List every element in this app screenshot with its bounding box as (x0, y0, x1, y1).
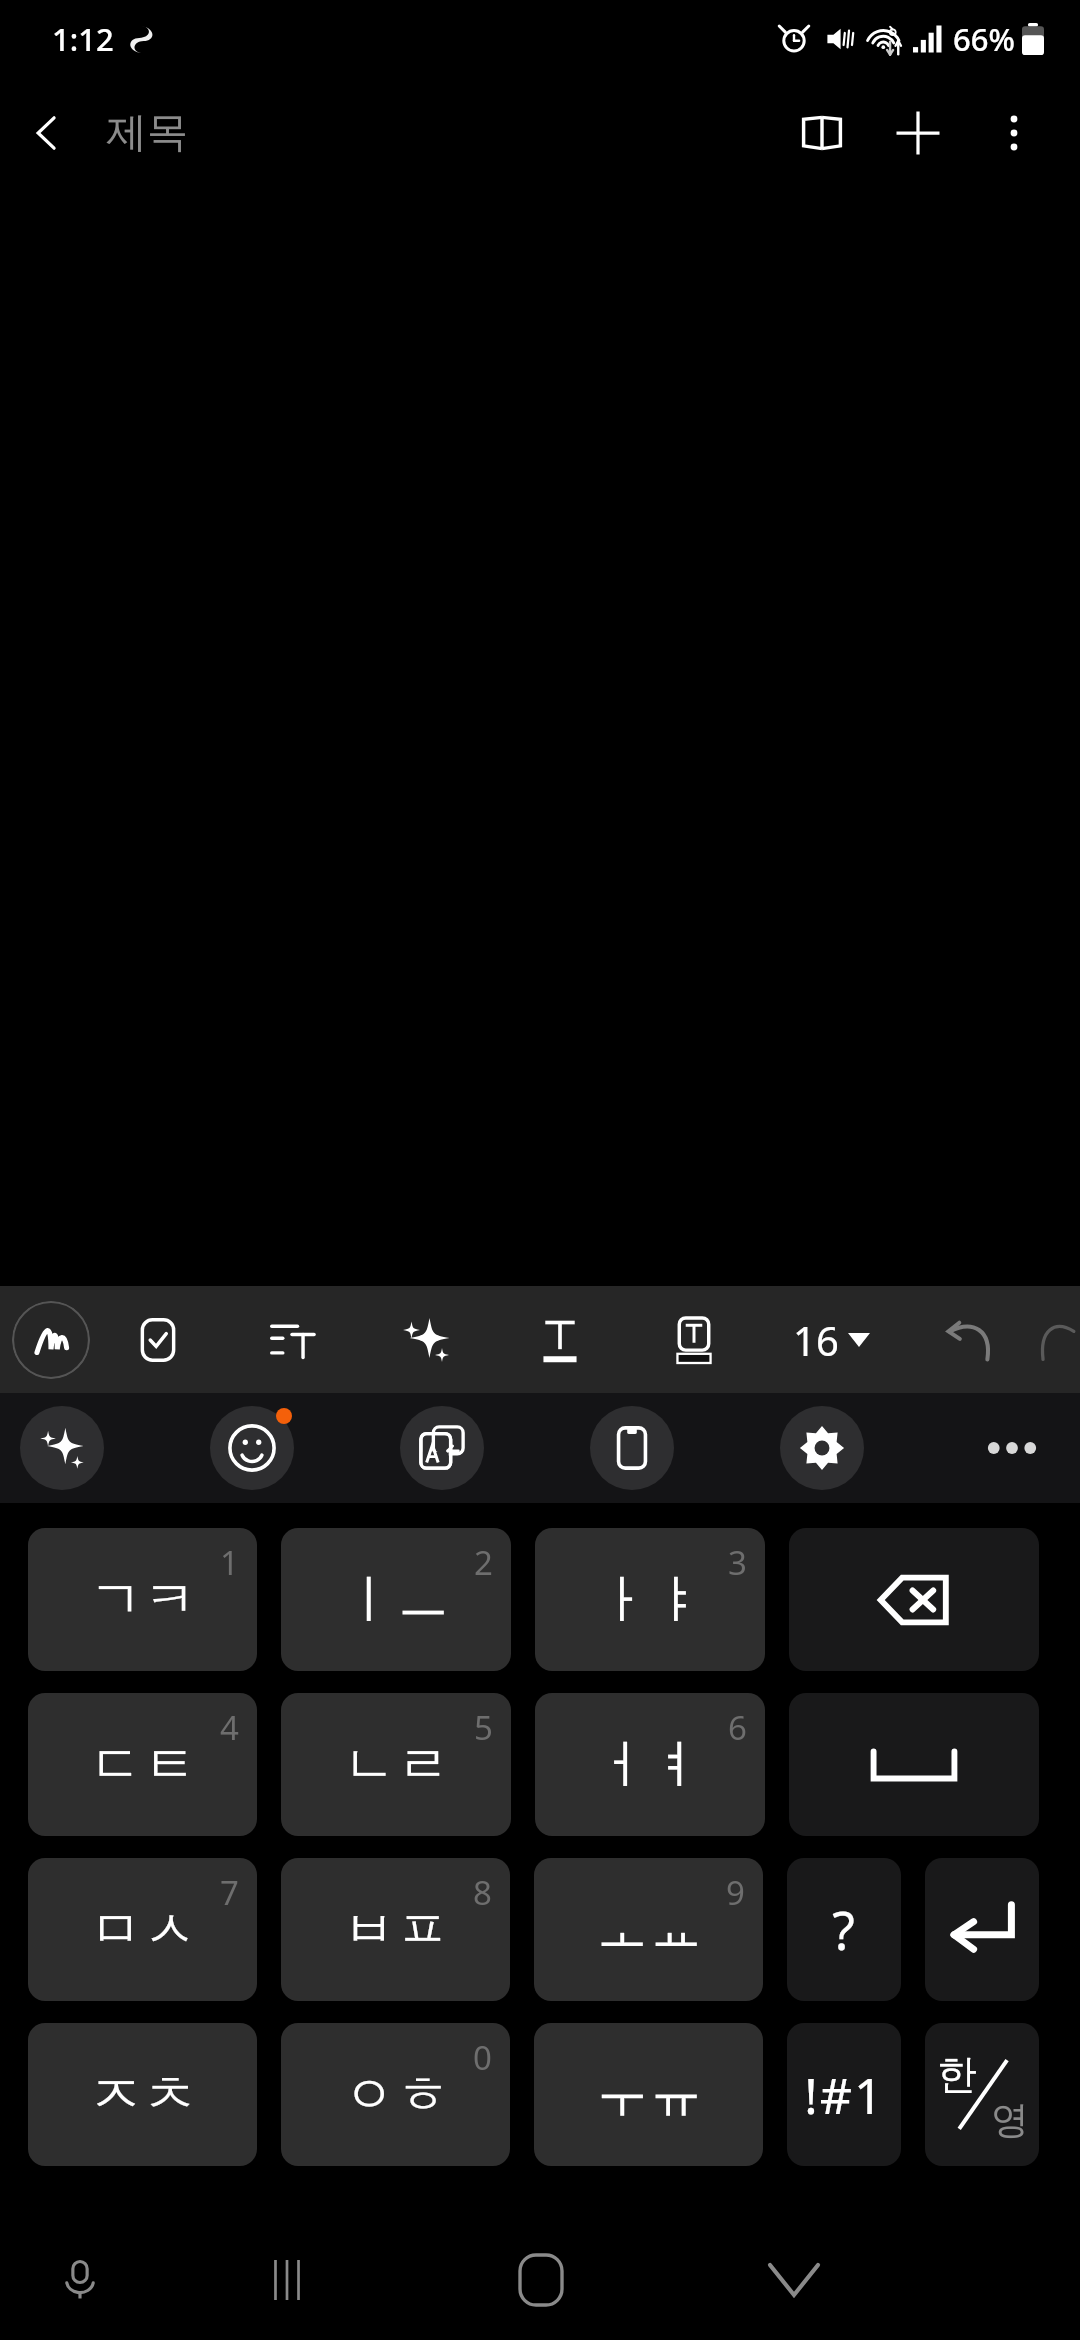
staticText: !#1 (804, 2061, 885, 2129)
button[interactable]: AI assist (359, 1286, 493, 1393)
button[interactable]: Text box (627, 1286, 761, 1393)
staticText: ㅈㅊ (89, 2062, 197, 2128)
button[interactable]: Font size (761, 1286, 902, 1393)
staticText: 제목 (106, 107, 188, 159)
button[interactable]: Recents (160, 2220, 414, 2340)
staticText: 66% (953, 18, 1015, 60)
staticText: 7 (220, 1870, 239, 1915)
button[interactable]: ㅇㅎ (281, 2023, 510, 2166)
staticText: ㅁㅅ (89, 1897, 197, 1963)
staticText: 3 (728, 1540, 747, 1585)
staticText: ㅓㅕ (596, 1732, 704, 1798)
button[interactable]: ? (787, 1858, 901, 2001)
staticText: 2 (474, 1540, 493, 1585)
button[interactable]: ㅈㅊ (28, 2023, 257, 2166)
staticText: ㅂㅍ (342, 1897, 450, 1963)
button[interactable]: ㅣㅡ (281, 1528, 511, 1671)
staticText: 영 (991, 2096, 1029, 2144)
staticText: 8 (473, 1870, 492, 1915)
staticText: 한 (937, 2049, 977, 2099)
button[interactable]: Add (870, 85, 966, 181)
staticText: 1 (220, 1540, 239, 1585)
button[interactable]: ㅏㅑ (535, 1528, 765, 1671)
button[interactable]: Enter (925, 1858, 1039, 2001)
button[interactable]: !#1 (787, 2023, 901, 2166)
button[interactable]: 한 (925, 2023, 1039, 2166)
button[interactable]: Backspace (789, 1528, 1039, 1671)
button[interactable]: Emoji (210, 1406, 294, 1490)
button[interactable]: Translate (400, 1406, 484, 1490)
button[interactable]: Voice input (0, 2220, 160, 2340)
staticText: ? (832, 1894, 857, 1965)
button[interactable]: ㄱㅋ (28, 1528, 257, 1671)
button[interactable]: Space (789, 1693, 1039, 1836)
staticText: ㄴㄹ (342, 1732, 450, 1798)
button[interactable]: More (970, 1406, 1054, 1490)
staticText: 9 (726, 1870, 745, 1915)
button[interactable]: ㄴㄹ (281, 1693, 511, 1836)
button[interactable]: Back (0, 85, 96, 181)
button[interactable]: ㅓㅕ (535, 1693, 765, 1836)
staticText: ㅣㅡ (342, 1567, 450, 1633)
button[interactable]: Hide keyboard (667, 2220, 920, 2340)
staticText: ㅗㅛ (595, 1897, 703, 1963)
button[interactable]: ㄷㅌ (28, 1693, 257, 1836)
staticText: ㄱㅋ (89, 1567, 197, 1633)
button[interactable]: ㅂㅍ (281, 1858, 510, 2001)
button[interactable]: Reading mode (774, 85, 870, 181)
button[interactable]: Text style (493, 1286, 627, 1393)
staticText: 16 (793, 1313, 839, 1367)
staticText: 6 (728, 1705, 747, 1750)
staticText: ㄷㅌ (89, 1732, 197, 1798)
button[interactable]: Keyboard settings (780, 1406, 864, 1490)
button[interactable]: AI assist (20, 1406, 104, 1490)
staticText: ㅏㅑ (596, 1567, 704, 1633)
button[interactable]: Checklist (90, 1286, 225, 1393)
staticText: 0 (473, 2035, 492, 2080)
button[interactable]: Home (414, 2220, 667, 2340)
button[interactable]: Paragraph (225, 1286, 359, 1393)
button[interactable]: Clipboard (590, 1406, 674, 1490)
button[interactable]: ㅜㅠ (534, 2023, 763, 2166)
button[interactable]: Handwriting (12, 1301, 90, 1379)
button[interactable]: ㅗㅛ (534, 1858, 763, 2001)
staticText: ㅇㅎ (342, 2062, 450, 2128)
button[interactable]: Redo (1036, 1286, 1080, 1393)
staticText: 1:12 (52, 18, 114, 60)
button[interactable]: More options (966, 85, 1062, 181)
staticText: ㅜㅠ (595, 2062, 703, 2128)
button[interactable]: ㅁㅅ (28, 1858, 257, 2001)
button[interactable]: Undo (902, 1286, 1036, 1393)
staticText: 4 (220, 1705, 239, 1750)
staticText: 5 (474, 1705, 493, 1750)
